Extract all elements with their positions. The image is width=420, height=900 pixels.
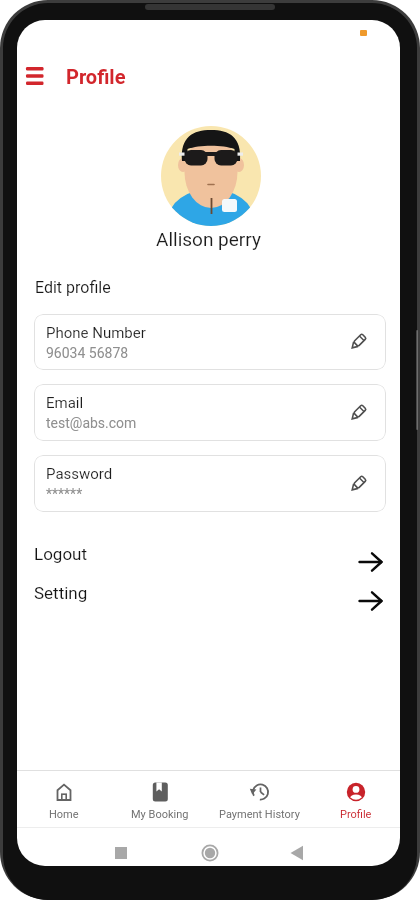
staticText: Edit profile: [35, 278, 111, 297]
button[interactable]: Email: [34, 384, 386, 441]
button[interactable]: [19, 58, 53, 92]
staticText: Setting: [34, 583, 88, 603]
button[interactable]: My Booking: [115, 771, 205, 827]
staticText: test@abs.com: [46, 415, 137, 431]
staticText: Allison perry: [156, 228, 261, 250]
staticText: Phone Number: [46, 324, 146, 342]
staticText: Profile: [66, 65, 126, 88]
button[interactable]: Payment History: [214, 771, 304, 827]
staticText: Profile: [340, 808, 372, 821]
staticText: Password: [46, 465, 113, 483]
staticText: 96034 56878: [46, 345, 129, 361]
button[interactable]: Home: [19, 771, 109, 827]
button[interactable]: Setting: [25, 574, 393, 612]
staticText: ******: [46, 486, 83, 502]
staticText: Logout: [34, 544, 88, 564]
button[interactable]: Password: [34, 455, 386, 512]
button[interactable]: Phone Number: [34, 314, 386, 370]
button[interactable]: Logout: [25, 535, 393, 573]
staticText: Home: [49, 808, 79, 821]
staticText: My Booking: [131, 808, 189, 821]
staticText: Payment History: [219, 808, 300, 821]
button[interactable]: Profile: [311, 771, 400, 827]
staticText: Email: [46, 394, 84, 412]
